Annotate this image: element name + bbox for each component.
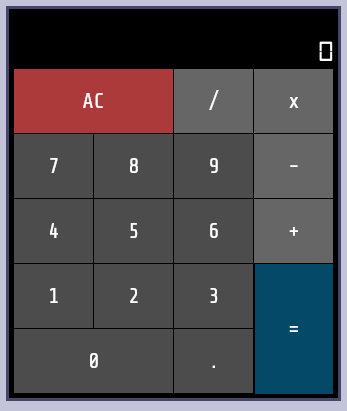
button[interactable]: 4 — [14, 199, 93, 263]
other: Display, 0 — [9, 9, 338, 69]
staticText: + — [288, 219, 300, 243]
staticText: . — [208, 349, 220, 373]
staticText: = — [288, 317, 300, 341]
staticText: 0 — [88, 349, 100, 373]
button[interactable]: 9 — [174, 134, 253, 198]
staticText: 1 — [48, 284, 60, 308]
button[interactable]: Divide — [174, 69, 253, 133]
staticText: 3 — [208, 284, 220, 308]
staticText: 8 — [128, 154, 140, 178]
button[interactable]: Plus — [254, 199, 333, 263]
staticText: AC — [82, 89, 105, 113]
staticText: 5 — [128, 219, 140, 243]
button[interactable]: 5 — [94, 199, 173, 263]
button[interactable]: 3 — [174, 264, 253, 328]
staticText: - — [288, 154, 300, 178]
staticText: 6 — [208, 219, 220, 243]
staticText: / — [208, 89, 220, 113]
button[interactable]: 0 — [14, 329, 173, 393]
staticText: 7 — [48, 154, 60, 178]
button[interactable]: Minus — [254, 134, 333, 198]
button[interactable]: 8 — [94, 134, 173, 198]
button[interactable]: Multiply — [254, 69, 333, 133]
button[interactable]: 1 — [14, 264, 93, 328]
button[interactable]: Decimal point — [174, 329, 253, 393]
button[interactable]: AC — [14, 69, 173, 133]
button[interactable]: 6 — [174, 199, 253, 263]
button[interactable]: 7 — [14, 134, 93, 198]
staticText: 2 — [128, 284, 140, 308]
staticText: 4 — [48, 219, 60, 243]
staticText: x — [288, 89, 300, 113]
staticText: 9 — [208, 154, 220, 178]
button[interactable]: Equals — [255, 264, 333, 394]
button[interactable]: 2 — [94, 264, 173, 328]
